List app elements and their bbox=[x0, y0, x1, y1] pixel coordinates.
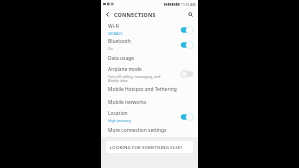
staticText: On bbox=[108, 46, 113, 51]
button[interactable]: Toggle on bbox=[180, 113, 194, 121]
button[interactable]: Airplane mode bbox=[101, 65, 198, 83]
staticText: CONNECTIONS bbox=[114, 11, 156, 18]
button[interactable]: Data usage bbox=[101, 52, 198, 65]
staticText: Bluetooth bbox=[108, 38, 131, 45]
button[interactable]: Back bbox=[103, 10, 112, 19]
button[interactable]: Toggle on bbox=[180, 26, 194, 34]
staticText: Wi-Fi bbox=[108, 23, 120, 30]
staticText: Turn off calling, messaging, and Mobile … bbox=[108, 74, 161, 83]
button[interactable]: Location bbox=[101, 109, 198, 124]
staticText: More connection settings bbox=[108, 127, 167, 134]
staticText: Data usage bbox=[108, 55, 134, 62]
button[interactable]: LOOKING FOR SOMETHING ELSE? bbox=[106, 141, 193, 153]
button[interactable]: Search bbox=[186, 10, 195, 19]
button[interactable]: Toggle off bbox=[180, 70, 194, 78]
staticText: High accuracy bbox=[108, 118, 132, 123]
button[interactable]: More connection settings bbox=[101, 124, 198, 137]
staticText: Location bbox=[108, 110, 128, 117]
button[interactable]: Toggle on bbox=[180, 41, 194, 49]
staticText: Airplane mode bbox=[108, 66, 142, 73]
button[interactable]: Bluetooth bbox=[101, 37, 198, 52]
staticText: Mobile networks bbox=[108, 99, 147, 106]
staticText: LOOKING FOR SOMETHING ELSE? bbox=[110, 144, 183, 150]
button[interactable]: Mobile Hotspot and Tethering bbox=[101, 83, 198, 96]
staticText: Mobile Hotspot and Tethering bbox=[108, 86, 177, 93]
staticText: SIGNALS bbox=[108, 31, 123, 36]
button[interactable]: Mobile networks bbox=[101, 96, 198, 109]
staticText: 11:10 AM bbox=[181, 2, 196, 6]
button[interactable]: Wi-Fi bbox=[101, 22, 198, 37]
